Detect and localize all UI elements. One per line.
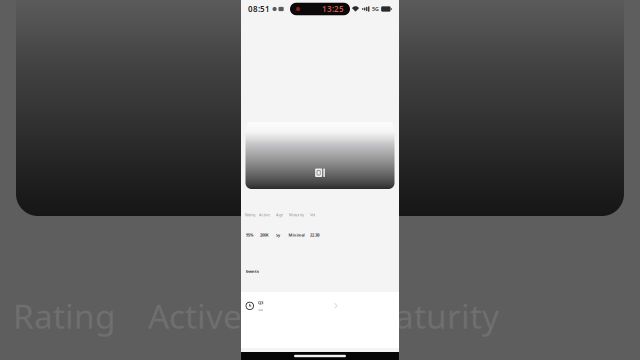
- staticText: 95%: [246, 232, 254, 238]
- staticText: 13:25: [322, 4, 344, 14]
- staticText: Maturity: [365, 294, 499, 338]
- staticText: Age: [276, 212, 283, 217]
- staticText: Rating: [13, 294, 116, 338]
- staticText: Active: [148, 294, 242, 338]
- staticText: 08:51: [248, 4, 270, 14]
- staticText: Rating: [245, 212, 255, 217]
- staticText: Vol: [310, 212, 315, 217]
- staticText: 5y: [276, 232, 280, 238]
- staticText: 5G: [372, 5, 379, 13]
- staticText: Active: [259, 212, 270, 217]
- staticText: TBA: [258, 308, 263, 312]
- staticText: Events: [246, 269, 259, 274]
- staticText: 22.3B: [310, 232, 320, 238]
- staticText: Minimal: [288, 232, 304, 238]
- button[interactable]: Q3: [241, 292, 399, 348]
- staticText: 200K: [260, 232, 269, 238]
- staticText: Maturity: [289, 212, 304, 217]
- staticText: Q3: [258, 300, 263, 305]
